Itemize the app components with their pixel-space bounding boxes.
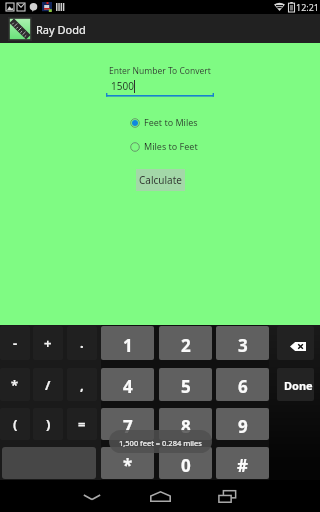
button[interactable]: Back [72, 481, 112, 511]
staticText: ( [13, 415, 18, 433]
button[interactable]: = [67, 408, 97, 440]
button[interactable]: Done [277, 368, 314, 401]
staticText: 5 [181, 375, 191, 398]
button[interactable]: # [216, 447, 269, 479]
button[interactable]: + [33, 326, 63, 360]
button[interactable]: 4 [101, 368, 154, 401]
button[interactable]: * [101, 447, 154, 479]
staticText: * [11, 376, 19, 394]
button[interactable]: 9 [216, 408, 269, 440]
button[interactable]: 5 [159, 368, 212, 401]
staticText: - [13, 334, 18, 352]
staticText: 4 [123, 375, 133, 398]
button[interactable]: Feet to Miles [130, 115, 198, 129]
staticText: 9 [238, 415, 248, 438]
staticText: Enter Number To Convert [109, 65, 211, 77]
button[interactable]: / [33, 368, 63, 401]
button[interactable]: 0 [159, 447, 212, 479]
staticText: 2 [181, 334, 191, 357]
button[interactable]: Backspace [277, 326, 314, 360]
button[interactable]: ) [33, 408, 63, 440]
staticText: 8 [181, 415, 191, 438]
button[interactable]: Home [140, 481, 180, 511]
button[interactable]: Recents [207, 481, 247, 511]
staticText: = [78, 415, 86, 433]
button[interactable]: 1 [101, 326, 154, 360]
button[interactable]: 2 [159, 326, 212, 360]
staticText: , [80, 376, 84, 394]
staticText: . [80, 334, 84, 352]
staticText: + [44, 334, 52, 352]
button[interactable]: 6 [216, 368, 269, 401]
button[interactable]: , [67, 368, 97, 401]
button[interactable]: 3 [216, 326, 269, 360]
button[interactable]: - [0, 326, 30, 360]
staticText: 0 [181, 454, 191, 477]
button[interactable]: * [0, 368, 30, 401]
staticText: Calculate [139, 173, 182, 187]
staticText: Done [284, 378, 313, 393]
button[interactable]: 7 [101, 408, 154, 440]
staticText: 12:21 [296, 1, 320, 13]
button[interactable]: . [67, 326, 97, 360]
staticText: 3 [238, 334, 248, 357]
button[interactable]: Calculate [136, 169, 185, 191]
staticText: Feet to Miles [144, 116, 198, 128]
button[interactable]: Miles to Feet [130, 139, 198, 153]
button[interactable]: ( [0, 408, 30, 440]
staticText: 1 [123, 334, 133, 357]
staticText: / [45, 376, 51, 394]
staticText: ) [46, 415, 51, 433]
staticText: Miles to Feet [144, 140, 198, 152]
staticText: * [123, 454, 133, 477]
staticText: # [237, 454, 248, 477]
staticText: Ray Dodd [36, 22, 86, 37]
staticText: 7 [123, 415, 133, 438]
staticText: 1,500 feet = 0.284 miles [119, 438, 202, 448]
staticText: 1500 [111, 79, 134, 93]
button[interactable]: 8 [159, 408, 212, 440]
staticText: 6 [238, 375, 248, 398]
